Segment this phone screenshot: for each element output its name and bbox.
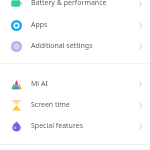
button[interactable]: Battery & performance bbox=[0, 0, 150, 13]
button[interactable]: Additional settings bbox=[0, 36, 150, 56]
button[interactable]: Special features bbox=[0, 116, 150, 136]
staticText: Mi AI bbox=[31, 79, 134, 89]
staticText: Screen time bbox=[31, 100, 134, 110]
staticText: Special features bbox=[31, 121, 134, 131]
staticText: Additional settings bbox=[31, 41, 134, 51]
button[interactable]: Mi AI bbox=[0, 74, 150, 94]
button[interactable]: Screen time bbox=[0, 95, 150, 115]
staticText: Apps bbox=[31, 20, 134, 30]
staticText: Battery & performance bbox=[31, 0, 134, 8]
button[interactable]: Apps bbox=[0, 15, 150, 35]
